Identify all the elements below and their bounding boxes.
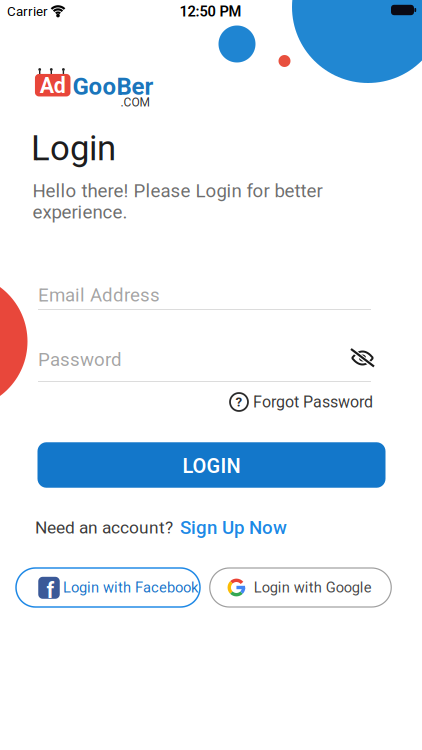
staticText: Password [38,349,122,370]
button[interactable]: Sign Up Now [180,517,287,538]
staticText: Forgot Password [253,393,373,411]
staticText: LOGIN [182,455,240,478]
button[interactable]: Email Address [38,280,371,314]
staticText: f [46,579,54,603]
staticText: .COM [120,95,149,109]
staticText: GooBer [72,73,153,100]
staticText: experience. [32,201,127,223]
button[interactable]: f [16,568,200,607]
staticText: Email Address [38,284,160,306]
button[interactable]: LOGIN [37,442,385,488]
button[interactable]: Password [38,345,371,387]
staticText: Need an account? [35,518,173,537]
staticText: Hello there! Please Login for better [32,180,322,201]
staticText: Carrier [7,4,48,19]
staticText: Sign Up Now [180,517,287,538]
staticText: 12:50 PM [179,3,241,20]
button[interactable]: ? [230,389,373,415]
staticText: Ad [40,74,66,98]
button[interactable]: Login with Google [210,568,391,607]
staticText: Login [31,129,116,168]
staticText: Login with Facebook [63,579,198,596]
staticText: Login with Google [254,579,372,596]
staticText: ? [235,394,242,410]
